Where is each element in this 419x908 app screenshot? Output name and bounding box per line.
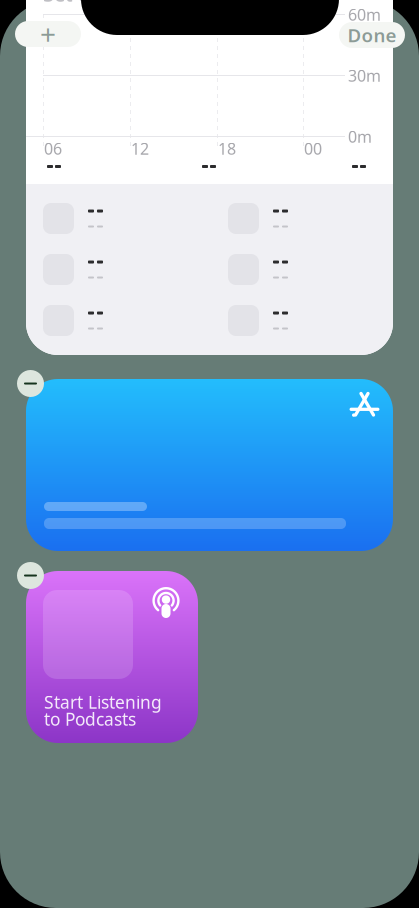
staticText: Done xyxy=(347,23,396,47)
staticText: 12 xyxy=(131,138,149,159)
staticText: 00 xyxy=(304,138,322,159)
button[interactable]: Done xyxy=(339,22,405,48)
staticText: 06 xyxy=(44,138,62,159)
button[interactable]: Remove widget xyxy=(17,370,44,397)
staticText: Set up xyxy=(43,0,103,7)
staticText: 30m xyxy=(348,65,381,86)
staticText: + xyxy=(40,15,56,53)
button[interactable]: Add widget xyxy=(15,21,81,47)
staticText: 60m xyxy=(348,4,381,25)
staticText: 0m xyxy=(348,126,372,147)
staticText: Start Listening xyxy=(44,690,162,713)
staticText: 18 xyxy=(218,138,236,159)
button[interactable]: Remove widget xyxy=(17,562,44,589)
staticText: to Podcasts xyxy=(44,707,136,730)
